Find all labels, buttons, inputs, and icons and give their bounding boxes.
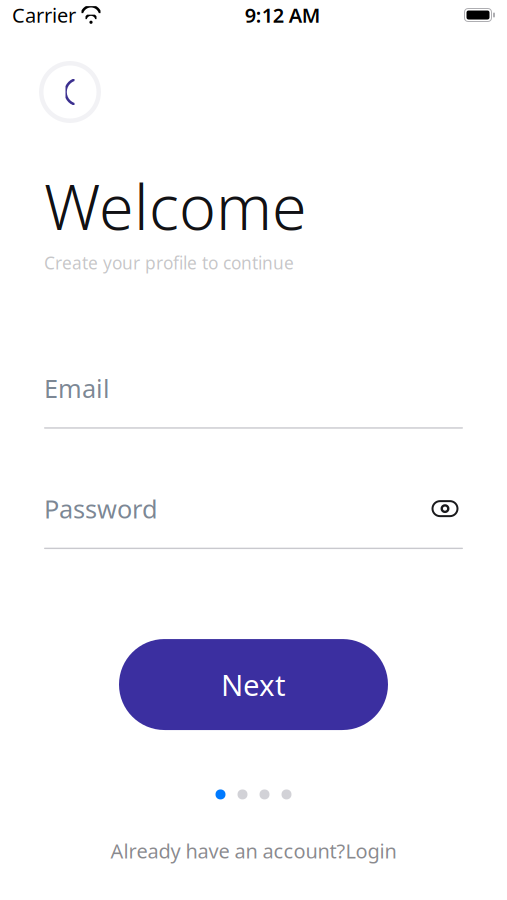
staticText: Next — [221, 665, 286, 704]
button[interactable]: Already have an account?Login — [86, 829, 420, 872]
staticText: Password — [44, 492, 158, 525]
button[interactable]: Next — [119, 639, 388, 730]
button[interactable]: Show password — [427, 493, 463, 525]
staticText: Welcome — [44, 164, 307, 247]
staticText: Carrier — [12, 2, 76, 28]
staticText: Create your profile to continue — [44, 251, 294, 274]
staticText: Email — [44, 371, 110, 405]
staticText: Already have an account?Login — [110, 837, 396, 864]
button[interactable]: Back — [38, 60, 102, 124]
staticText: 9:12 AM — [245, 2, 321, 28]
